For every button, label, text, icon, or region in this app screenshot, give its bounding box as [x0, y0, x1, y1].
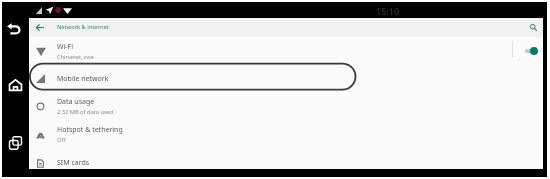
staticText: Data usage: [57, 97, 95, 107]
button[interactable]: Wi-Fi: [29, 37, 543, 65]
button[interactable]: Hotspot & tethering: [29, 120, 543, 149]
staticText: 2.32 MB of data used: [57, 108, 114, 116]
button[interactable]: Recent apps: [5, 131, 25, 155]
button[interactable]: SIM cards: [29, 149, 543, 177]
button[interactable]: Home: [5, 73, 25, 97]
staticText: Mobile network: [57, 74, 109, 84]
staticText: SIM cards: [57, 158, 90, 168]
button[interactable]: Back: [4, 16, 24, 40]
staticText: Network & internet: [57, 23, 109, 31]
staticText: Hotspot & tethering: [57, 125, 123, 135]
staticText: Chinanet_cwe: [57, 53, 94, 61]
staticText: 15:10: [376, 5, 400, 17]
button[interactable]: Wi-Fi on/off: [518, 42, 540, 59]
staticText: Wi-Fi: [57, 42, 74, 52]
button[interactable]: Data usage: [29, 92, 543, 120]
button[interactable]: Navigate up: [32, 20, 47, 35]
button[interactable]: Mobile network: [29, 65, 543, 92]
staticText: Off: [57, 136, 66, 144]
button[interactable]: Search: [526, 20, 541, 35]
